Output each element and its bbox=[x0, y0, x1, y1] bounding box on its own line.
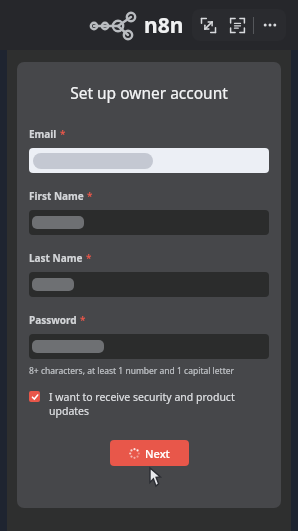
staticText: I want to receive security and product u… bbox=[49, 390, 269, 418]
button[interactable] bbox=[29, 334, 269, 359]
staticText: * bbox=[60, 127, 66, 141]
button[interactable] bbox=[29, 272, 269, 297]
button[interactable] bbox=[29, 210, 269, 235]
button[interactable]: More options bbox=[257, 12, 283, 38]
staticText: Email bbox=[29, 127, 57, 141]
button[interactable]: Scan bbox=[224, 12, 250, 38]
button[interactable]: Expand bbox=[195, 12, 221, 38]
staticText: * bbox=[87, 189, 93, 203]
staticText: * bbox=[80, 313, 86, 327]
staticText: First Name bbox=[29, 189, 84, 203]
button[interactable] bbox=[29, 148, 269, 173]
button[interactable]: I want to receive security and product u… bbox=[29, 390, 269, 418]
button[interactable]: Next bbox=[110, 440, 189, 466]
staticText: * bbox=[86, 251, 92, 265]
staticText: Last Name bbox=[29, 251, 83, 265]
staticText: Set up owner account bbox=[29, 82, 269, 103]
staticText: Password bbox=[29, 313, 77, 327]
staticText: n8n bbox=[144, 11, 184, 40]
staticText: Next bbox=[145, 446, 170, 461]
staticText: 8+ characters, at least 1 number and 1 c… bbox=[29, 365, 235, 377]
